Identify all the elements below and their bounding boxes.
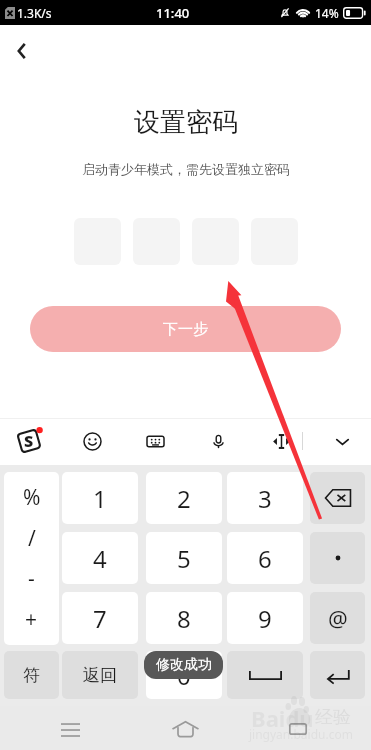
- button[interactable]: 下一步: [30, 306, 341, 352]
- staticText: 9: [258, 602, 272, 635]
- button[interactable]: 5: [146, 532, 222, 584]
- staticText: -: [28, 564, 35, 593]
- staticText: Baidu: [251, 703, 314, 733]
- button[interactable]: @: [310, 592, 365, 644]
- staticText: 14%: [315, 5, 339, 21]
- staticText: 设置密码: [134, 106, 238, 139]
- button[interactable]: [310, 532, 365, 584]
- staticText: 11:40: [156, 4, 190, 22]
- button[interactable]: Back: [6, 35, 38, 67]
- staticText: 0: [177, 659, 191, 692]
- staticText: 2: [177, 482, 191, 515]
- button[interactable]: Menu: [50, 709, 90, 749]
- button[interactable]: 4: [62, 532, 138, 584]
- button[interactable]: [310, 472, 365, 524]
- button[interactable]: 9: [227, 592, 303, 644]
- button[interactable]: 3: [227, 472, 303, 524]
- staticText: S: [24, 430, 34, 452]
- button[interactable]: Move cursor: [269, 429, 293, 453]
- staticText: 下一步: [163, 320, 208, 339]
- button[interactable]: [227, 651, 303, 699]
- button[interactable]: 1: [62, 472, 138, 524]
- button[interactable]: Voice input: [206, 429, 230, 453]
- button[interactable]: 7: [62, 592, 138, 644]
- button[interactable]: [310, 651, 365, 699]
- staticText: +: [25, 605, 38, 634]
- button[interactable]: Recents: [278, 709, 318, 749]
- button[interactable]: 6: [227, 532, 303, 584]
- staticText: 4: [93, 542, 107, 575]
- staticText: jingyan.baidu.com: [249, 726, 353, 742]
- staticText: /: [28, 524, 36, 553]
- button[interactable]: 0: [146, 651, 222, 699]
- staticText: 3: [258, 482, 272, 515]
- staticText: 8: [177, 602, 191, 635]
- button[interactable]: Keyboard: [143, 429, 167, 453]
- button[interactable]: 符: [4, 651, 59, 699]
- staticText: 6: [258, 542, 272, 575]
- staticText: @: [328, 603, 348, 633]
- staticText: 经验: [315, 706, 351, 729]
- button[interactable]: Emoji: [80, 429, 104, 453]
- button[interactable]: 8: [146, 592, 222, 644]
- staticText: 1.3K/s: [17, 5, 52, 21]
- staticText: %: [23, 483, 41, 512]
- staticText: 7: [93, 602, 107, 635]
- button[interactable]: %: [4, 472, 59, 645]
- button[interactable]: Hide keyboard: [330, 429, 354, 453]
- button[interactable]: 返回: [62, 651, 138, 699]
- staticText: 符: [23, 665, 40, 686]
- staticText: 修改成功: [156, 656, 212, 674]
- button[interactable]: Sogou input: [15, 425, 45, 455]
- staticText: 返回: [83, 665, 117, 686]
- button[interactable]: 2: [146, 472, 222, 524]
- button[interactable]: Home: [165, 709, 205, 749]
- staticText: 启动青少年模式，需先设置独立密码: [82, 161, 290, 177]
- staticText: 5: [177, 542, 191, 575]
- staticText: 1: [93, 482, 107, 515]
